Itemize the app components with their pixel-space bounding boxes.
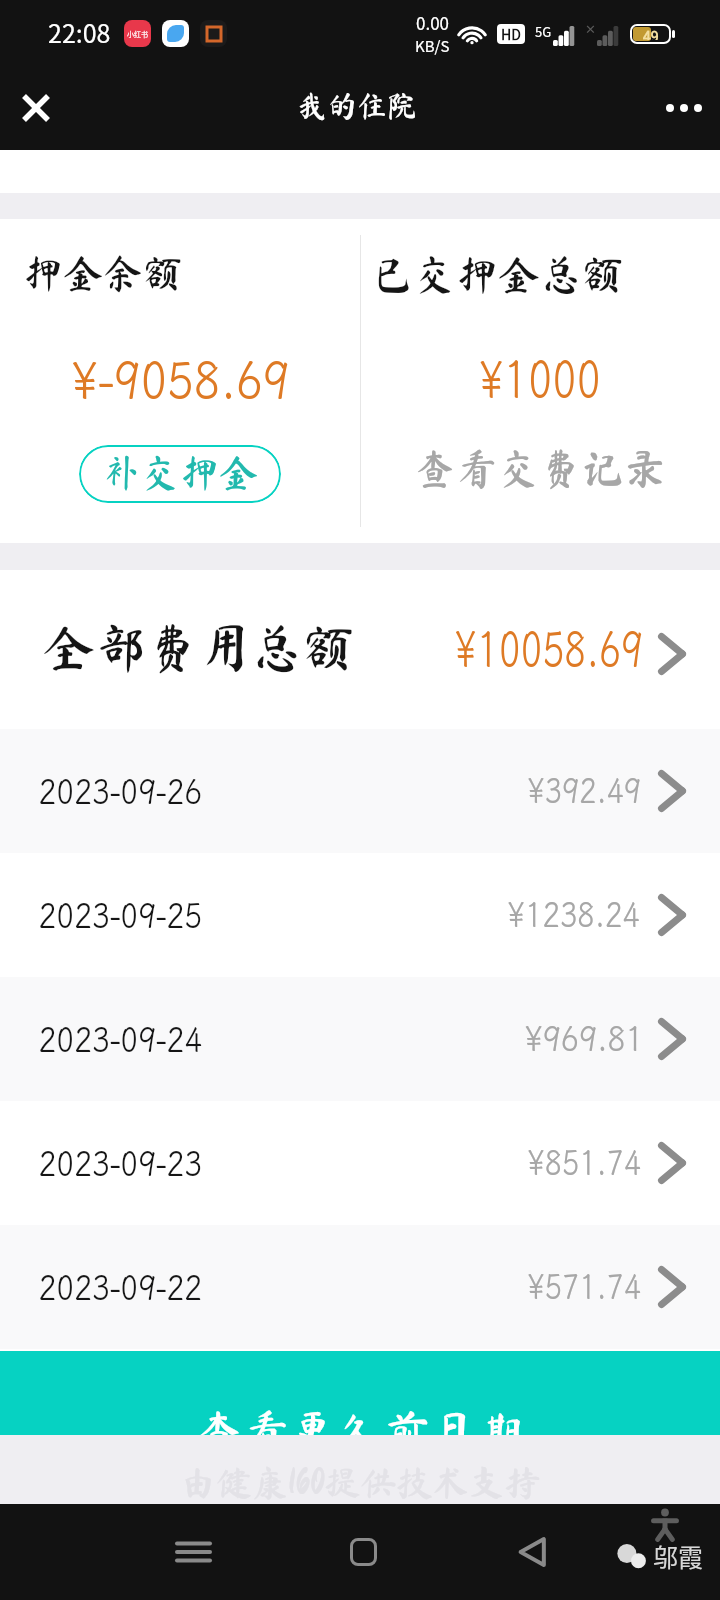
staticText: ¥851.74 bbox=[527, 1139, 641, 1185]
staticText: HD bbox=[501, 24, 521, 44]
button[interactable]: More options bbox=[656, 80, 712, 136]
staticText: 2023-09-26 bbox=[38, 768, 202, 814]
staticText: 0.00 bbox=[416, 10, 450, 35]
staticText: ¥571.74 bbox=[527, 1263, 641, 1309]
staticText: 押金余额 bbox=[23, 253, 183, 293]
staticText: KB/S bbox=[415, 35, 450, 57]
staticText: 2023-09-23 bbox=[38, 1140, 202, 1186]
button[interactable]: 2023-09-24 bbox=[0, 977, 720, 1101]
staticText: ¥1238.24 bbox=[508, 891, 640, 937]
staticText: ¥969.81 bbox=[525, 1015, 644, 1061]
staticText: 由健康160提供技术支持 bbox=[180, 1464, 541, 1500]
button[interactable]: 补交押金 bbox=[79, 445, 281, 503]
staticText: 邬霞 bbox=[653, 1538, 704, 1574]
button[interactable]: 全部费用总额 bbox=[0, 570, 720, 729]
staticText: 全部费用总额 bbox=[43, 621, 356, 673]
staticText: 5G bbox=[535, 22, 552, 41]
button[interactable]: Home bbox=[328, 1520, 392, 1584]
button[interactable]: 查看交费记录 bbox=[390, 445, 690, 503]
staticText: 2023-09-25 bbox=[38, 892, 202, 938]
staticText: 查看更久前日期 bbox=[196, 1408, 525, 1455]
staticText: ¥1000 bbox=[479, 343, 602, 411]
button[interactable]: 2023-09-25 bbox=[0, 853, 720, 977]
staticText: 我的住院 bbox=[297, 91, 417, 121]
button[interactable]: 2023-09-26 bbox=[0, 729, 720, 853]
button[interactable]: 2023-09-23 bbox=[0, 1101, 720, 1225]
staticText: ✕ bbox=[585, 22, 596, 37]
button[interactable]: Back bbox=[500, 1520, 564, 1584]
staticText: ¥10058.69 bbox=[455, 614, 643, 680]
staticText: 2023-09-22 bbox=[38, 1264, 202, 1310]
button[interactable]: 2023-09-22 bbox=[0, 1225, 720, 1349]
staticText: 22:08 bbox=[48, 14, 111, 50]
button[interactable]: 查看更久前日期 bbox=[0, 1351, 720, 1435]
staticText: ¥392.49 bbox=[527, 767, 641, 813]
staticText: 查看交费记录 bbox=[414, 447, 667, 489]
staticText: 小红书 bbox=[127, 29, 148, 39]
staticText: 2023-09-24 bbox=[38, 1016, 202, 1062]
button[interactable]: Recents bbox=[161, 1520, 225, 1584]
staticText: 49 bbox=[643, 26, 659, 40]
button[interactable]: Close bbox=[8, 80, 64, 136]
staticText: 已交押金总额 bbox=[372, 253, 625, 295]
staticText: 补交押金 bbox=[102, 453, 259, 492]
staticText: ¥-9058.69 bbox=[71, 344, 289, 412]
